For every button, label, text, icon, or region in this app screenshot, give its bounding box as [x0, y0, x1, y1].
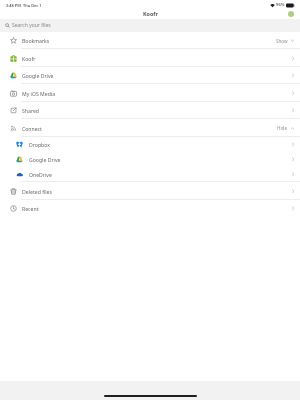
staticText: 3:48 PM [6, 3, 21, 8]
staticText: Search your files [12, 22, 51, 29]
button[interactable]: Shared [0, 102, 300, 119]
staticText: Google Drive [29, 156, 61, 163]
staticText: Shared [22, 107, 39, 114]
staticText: Thu Dec 1 [23, 3, 42, 8]
button[interactable]: My iOS Media [0, 84, 300, 102]
staticText: Connect [22, 125, 42, 132]
button[interactable]: Connect [0, 119, 300, 137]
staticText: Google Drive [22, 72, 54, 79]
staticText: Hide [277, 125, 288, 131]
staticText: Show [276, 38, 288, 44]
staticText: Deleted files [22, 188, 52, 195]
button[interactable]: Google Drive [0, 152, 300, 167]
button[interactable]: Deleted files [0, 182, 300, 200]
button[interactable]: Koofr [0, 49, 300, 67]
button[interactable]: Account [288, 11, 294, 17]
staticText: 96% [276, 2, 285, 8]
button[interactable]: Bookmarks [0, 32, 300, 49]
button[interactable]: Dropbox [0, 137, 300, 152]
staticText: Koofr [143, 10, 158, 17]
button[interactable]: Recent [0, 200, 300, 216]
staticText: Recent [22, 205, 39, 212]
staticText: My iOS Media [22, 90, 56, 97]
staticText: Dropbox [29, 141, 50, 148]
staticText: Bookmarks [22, 37, 50, 44]
staticText: OneDrive [29, 171, 52, 178]
staticText: Koofr [22, 55, 36, 62]
button[interactable]: OneDrive [0, 167, 300, 182]
button[interactable]: Google Drive [0, 67, 300, 84]
